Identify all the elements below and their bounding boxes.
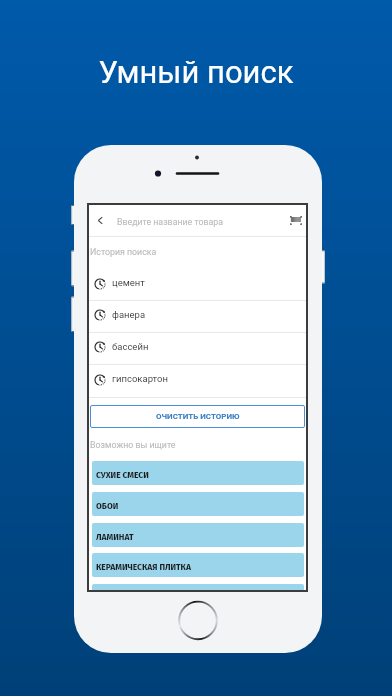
button[interactable]: гипсокартон [87,364,308,397]
button[interactable]: ЛАМИНАТ [92,523,304,547]
staticText: ЛАМИНАТ [96,531,134,542]
staticText: Умный поиск [0,54,392,90]
button[interactable]: цемент [87,269,308,300]
staticText: гипсокартон [112,373,168,384]
staticText: История поиска [90,247,157,257]
button[interactable]: КЕРАМИЧЕСКАЯ ПЛИТКА [92,553,304,577]
button[interactable]: Back [87,205,308,236]
staticText: Возможно вы ищите [90,440,176,450]
staticText: ОЧИСТИТЬ ИСТОРИЮ [156,412,240,421]
staticText: КЕРАМИЧЕСКАЯ ПЛИТКА [96,561,191,572]
staticText: цемент [112,277,145,288]
staticText: СУХИЕ СМЕСИ [96,469,149,480]
button[interactable]: Scan barcode [283,205,308,236]
button[interactable]: фанера [87,300,308,332]
button[interactable]: ПЛИНТУС [92,584,304,592]
button[interactable]: бассейн [87,332,308,364]
button[interactable]: СУХИЕ СМЕСИ [92,461,304,485]
button[interactable]: ОЧИСТИТЬ ИСТОРИЮ [90,405,305,428]
button[interactable]: ОБОИ [92,492,304,516]
staticText: Введите название товара [117,217,224,227]
button[interactable]: Back [87,205,113,236]
staticText: ОБОИ [96,500,119,511]
staticText: бассейн [112,341,149,352]
staticText: фанера [112,309,146,320]
